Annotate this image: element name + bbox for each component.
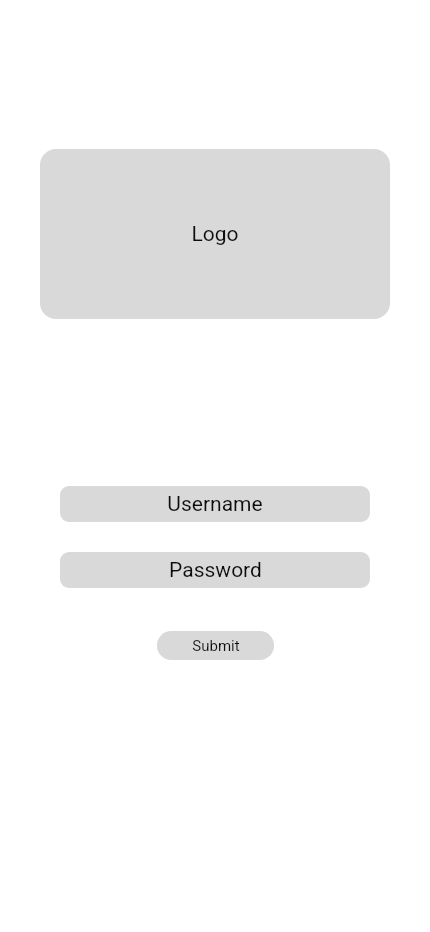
button[interactable]: Password input field (60, 552, 370, 588)
staticText: Password (169, 558, 262, 583)
button[interactable]: App logo (40, 149, 390, 319)
staticText: Logo (191, 222, 239, 247)
staticText: Username (167, 492, 263, 517)
staticText: Submit (192, 637, 240, 655)
button[interactable]: Username input field (60, 486, 370, 522)
button[interactable]: Submit (157, 631, 274, 660)
